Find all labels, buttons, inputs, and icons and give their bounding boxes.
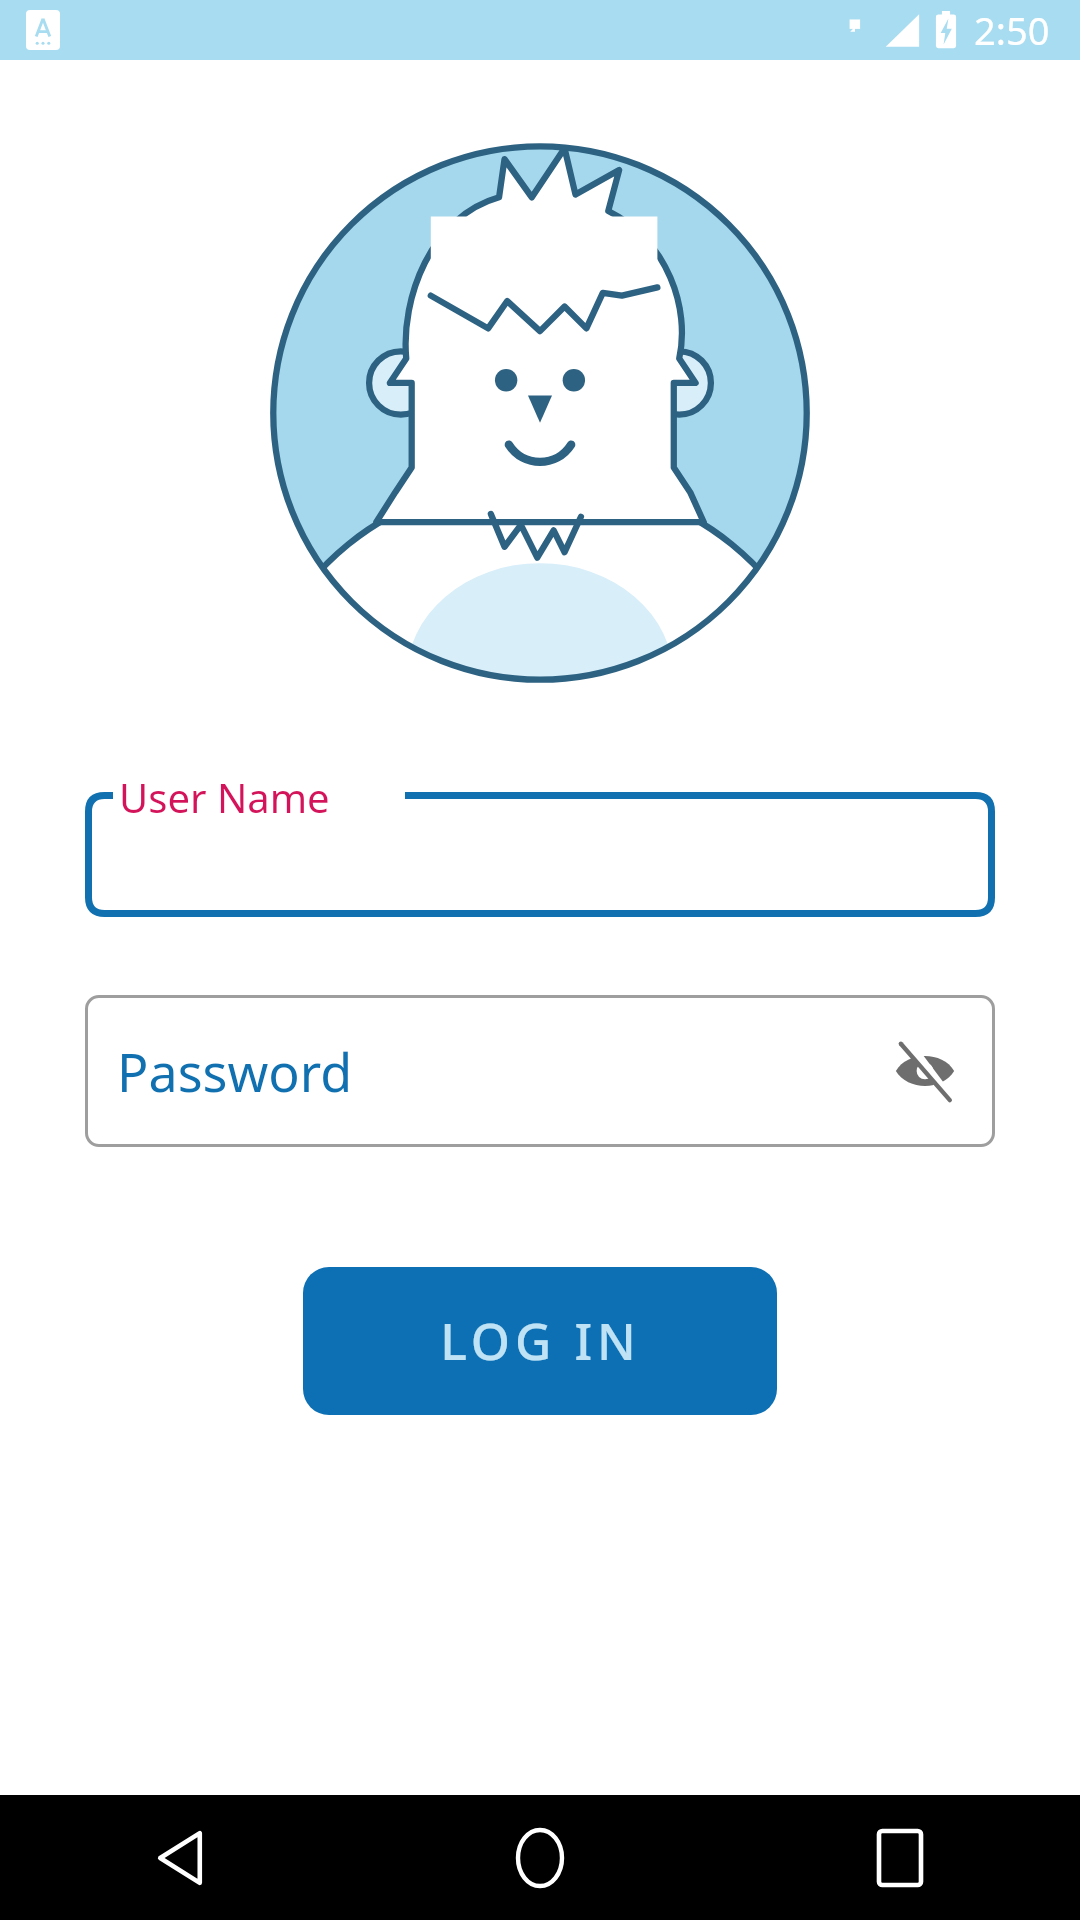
button[interactable]: Password	[85, 995, 995, 1147]
staticText: Password	[117, 1036, 353, 1107]
button[interactable]: Home	[485, 1803, 595, 1913]
button[interactable]: Back	[125, 1803, 235, 1913]
staticText: 2:50	[974, 4, 1050, 56]
button[interactable]: Toggle password visibility	[885, 1031, 965, 1111]
staticText: User Name	[119, 770, 330, 824]
button[interactable]: Recent apps	[845, 1803, 955, 1913]
button[interactable]	[85, 792, 995, 917]
button[interactable]: LOG IN	[303, 1267, 777, 1415]
staticText: LOG IN	[440, 1307, 641, 1375]
